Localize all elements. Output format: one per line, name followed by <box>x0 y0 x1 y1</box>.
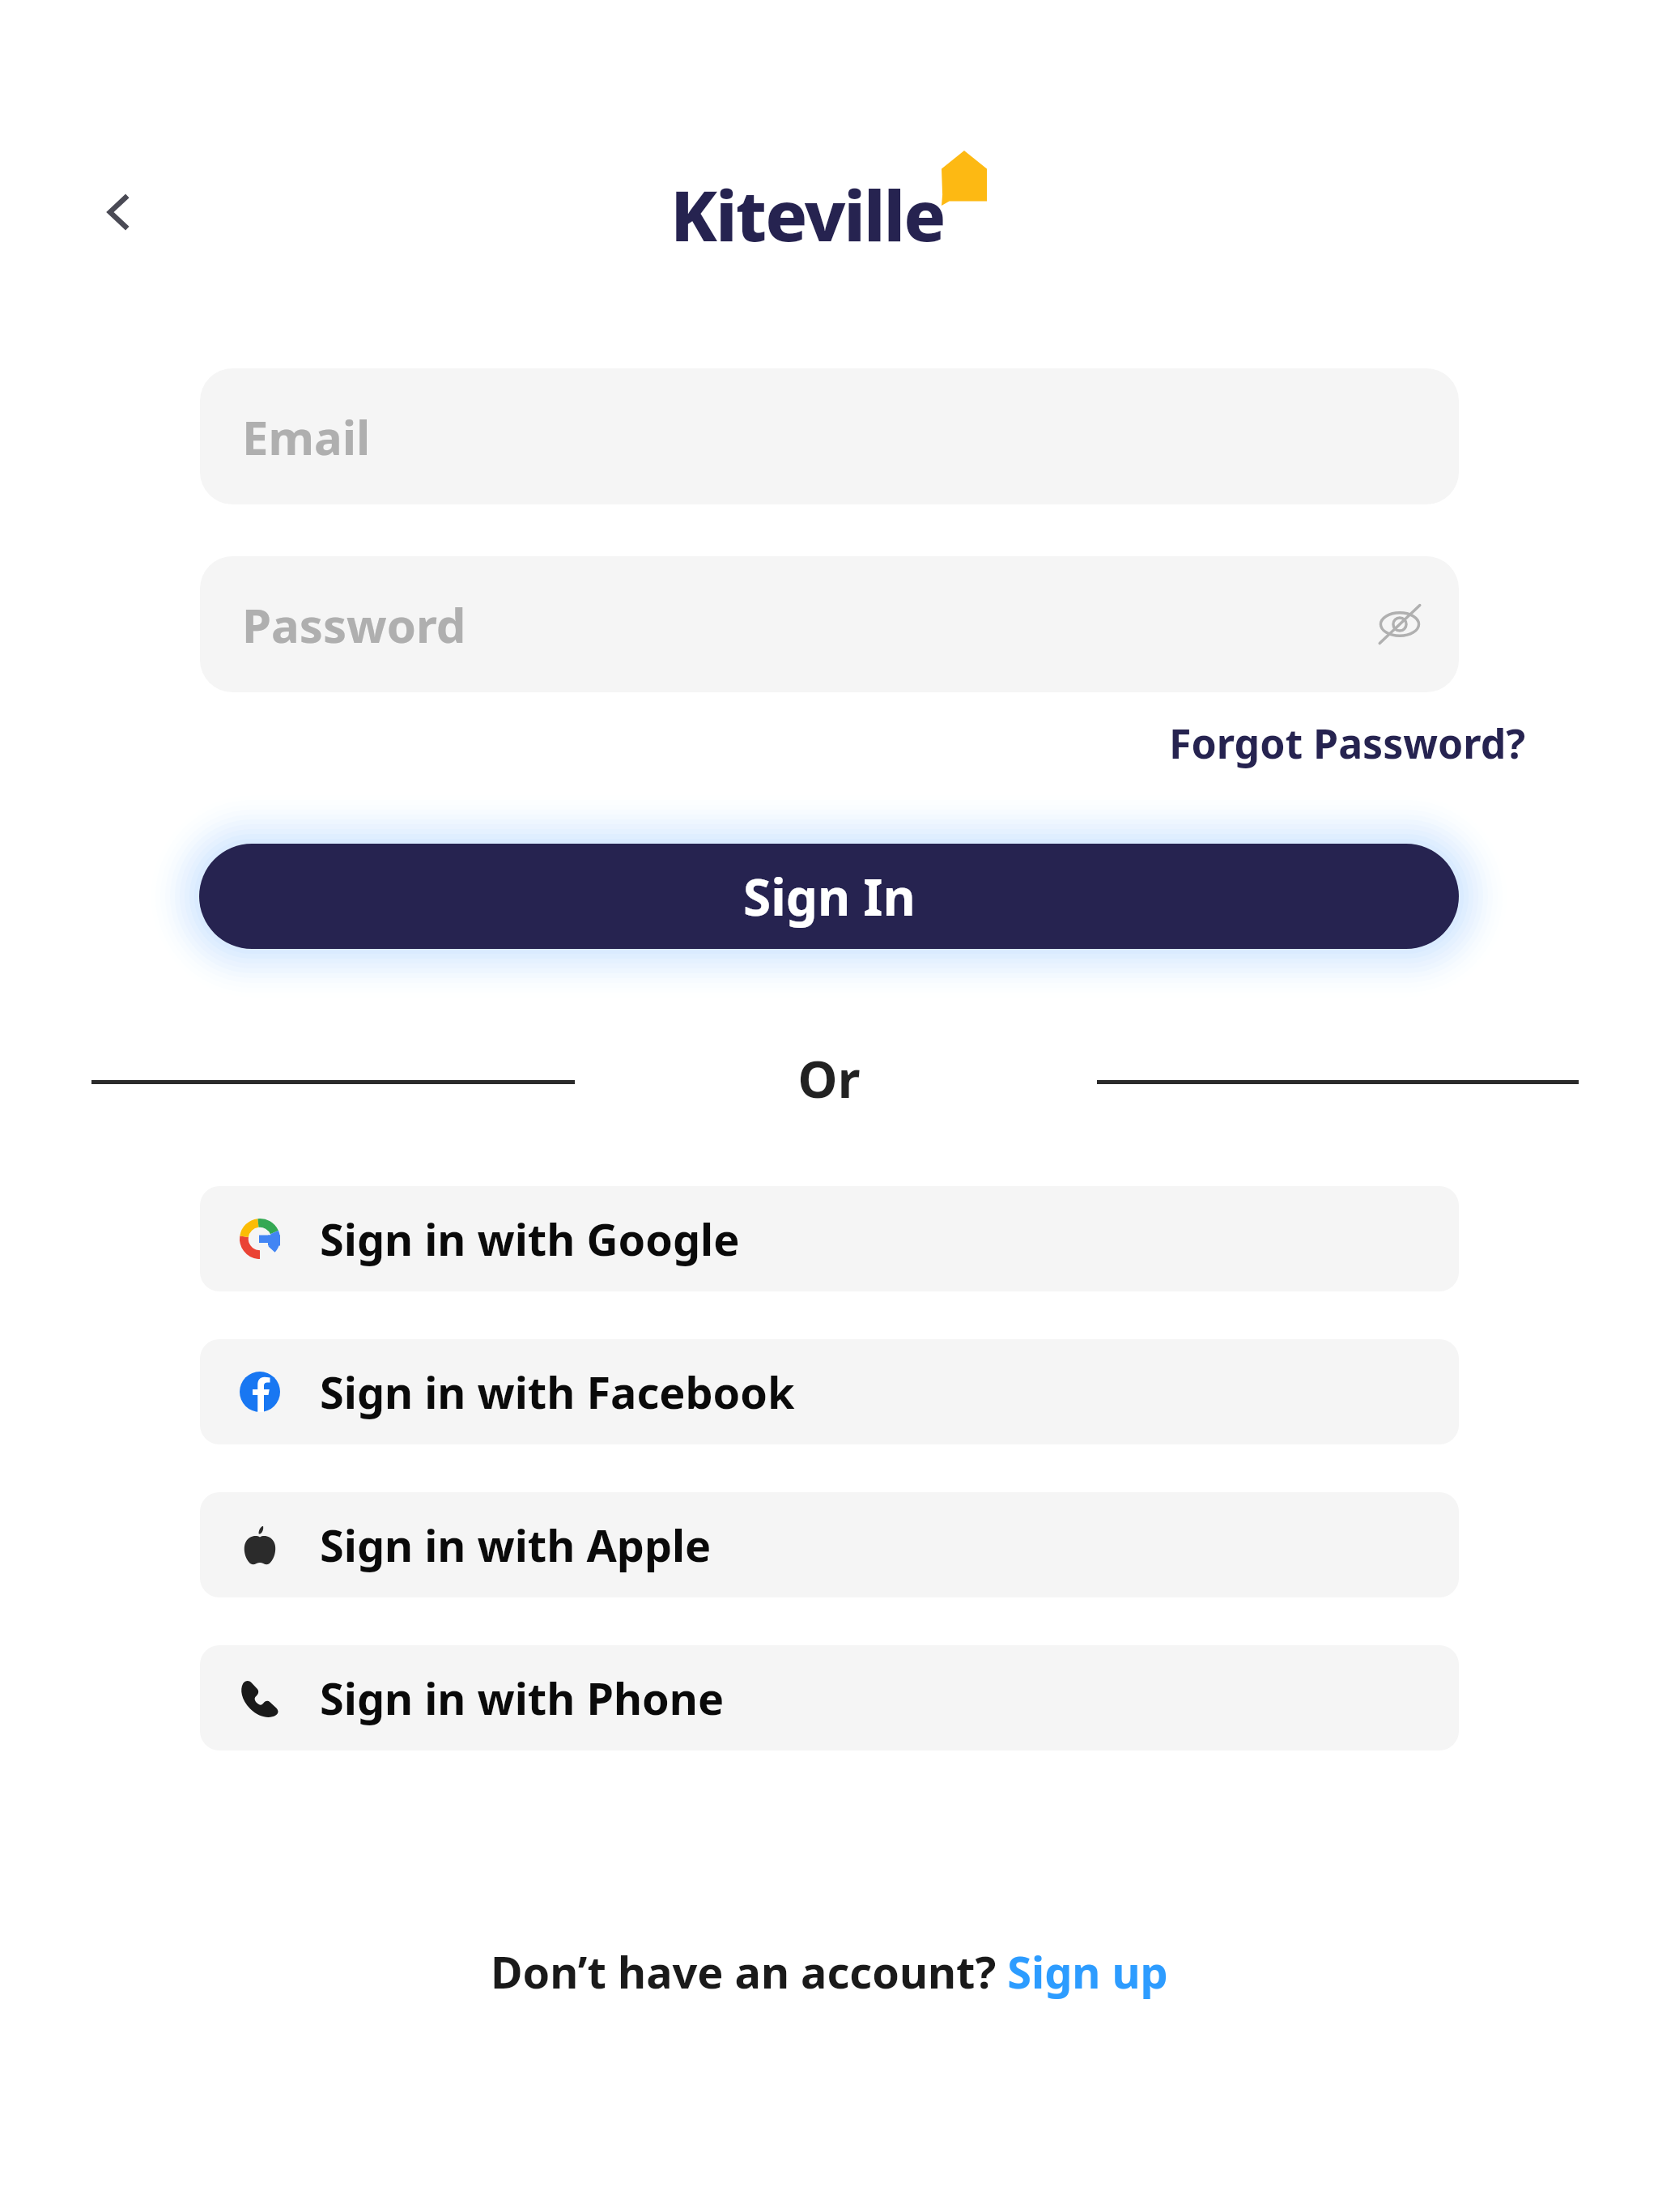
staticText: Sign in with Phone <box>320 1668 725 1728</box>
button[interactable]: Sign in with Facebook <box>200 1339 1459 1444</box>
staticText: Sign in with Facebook <box>320 1362 795 1422</box>
button[interactable]: Don’t have an account? Sign up <box>484 1935 1175 2008</box>
button[interactable]: Email <box>200 368 1459 504</box>
button[interactable]: Show password <box>1365 589 1435 659</box>
staticText: Sign in with Google <box>320 1209 740 1269</box>
button[interactable]: Sign in with Apple <box>200 1492 1459 1597</box>
staticText: Password <box>242 593 466 657</box>
staticText: Email <box>242 405 371 469</box>
button[interactable]: Forgot Password? <box>1166 713 1529 774</box>
button[interactable]: Sign in with Google <box>200 1186 1459 1291</box>
staticText: Don’t have an account? Sign up <box>491 1942 1168 2001</box>
button[interactable]: Password <box>200 556 1459 692</box>
button[interactable]: Sign in with Phone <box>200 1645 1459 1750</box>
staticText: Sign in with Apple <box>320 1515 712 1575</box>
staticText: Or <box>0 1044 1658 1112</box>
staticText: Kiteville <box>670 167 945 262</box>
staticText: Sign In <box>743 862 916 930</box>
staticText: Forgot Password? <box>1169 716 1526 771</box>
button[interactable]: Back <box>78 172 159 253</box>
button[interactable]: Sign In <box>199 844 1459 949</box>
